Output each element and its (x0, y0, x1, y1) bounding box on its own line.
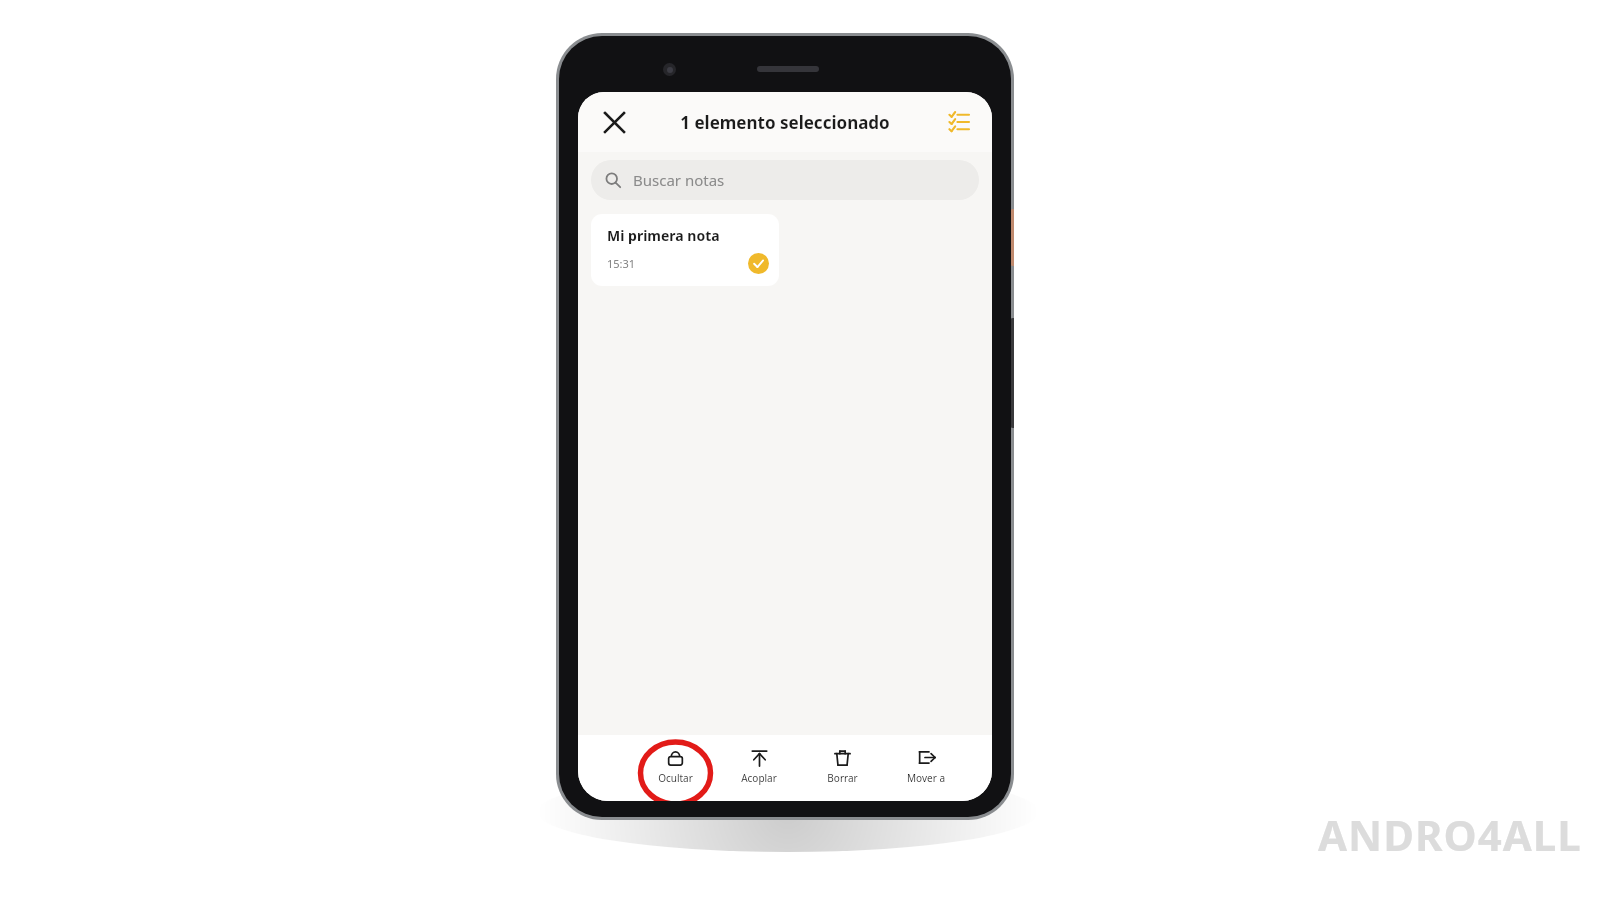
button[interactable]: Mi primera nota (591, 214, 779, 286)
button[interactable]: Acoplar (723, 741, 794, 801)
button[interactable]: Mover a (890, 741, 962, 801)
button[interactable]: Seleccionar todo (938, 101, 980, 143)
staticText: Borrar (827, 771, 858, 785)
staticText: 15:31 (607, 256, 636, 271)
button[interactable]: Buscar notas (591, 160, 979, 200)
staticText: Mi primera nota (607, 226, 720, 245)
staticText: Ocultar (658, 771, 693, 785)
staticText: Buscar notas (633, 170, 725, 190)
staticText: Mover a (907, 771, 945, 785)
staticText: Acoplar (741, 771, 777, 785)
staticText: ANDRO4ALL (1318, 806, 1582, 863)
staticText: 1 elemento seleccionado (680, 111, 890, 134)
button[interactable]: Ocultar (640, 741, 711, 801)
button[interactable]: Borrar (806, 741, 878, 801)
button[interactable]: Cerrar (592, 100, 636, 144)
